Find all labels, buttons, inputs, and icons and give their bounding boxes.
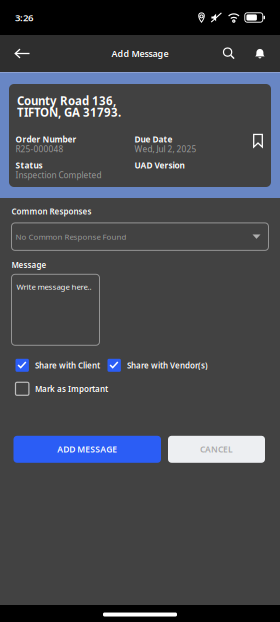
staticText: Due Date — [134, 134, 172, 145]
staticText: ADD MESSAGE — [57, 443, 117, 455]
staticText: No Common Response Found — [15, 231, 126, 242]
staticText: Inspection Completed — [15, 169, 101, 181]
staticText: Share with Vendor(s) — [127, 360, 208, 371]
staticText: R25-000048 — [15, 143, 63, 155]
staticText: Mark as Important — [35, 383, 108, 394]
button[interactable]: CANCEL — [168, 436, 265, 463]
button[interactable]: Mark as Important — [15, 382, 108, 395]
button[interactable]: ADD MESSAGE — [13, 436, 161, 463]
staticText: Wed, Jul 2, 2025 — [134, 143, 196, 155]
staticText: Order Number — [15, 134, 76, 145]
button[interactable]: Write message here.. — [11, 274, 99, 345]
button[interactable]: Search — [210, 35, 248, 72]
button[interactable]: Share with Client — [15, 359, 100, 372]
staticText: Message — [11, 259, 46, 270]
staticText: CANCEL — [200, 443, 233, 455]
button[interactable]: Bookmark — [253, 134, 263, 148]
staticText: Write message here.. — [16, 281, 91, 292]
staticText: Status — [15, 160, 42, 171]
button[interactable]: No Common Response Found — [11, 223, 268, 250]
button[interactable]: Notifications — [248, 35, 272, 72]
button[interactable]: Back — [0, 35, 50, 72]
staticText: 3:26 — [15, 11, 33, 24]
staticText: Share with Client — [35, 360, 100, 371]
staticText: Common Responses — [11, 206, 91, 217]
staticText: TIFTON, GA 31793. — [17, 105, 121, 120]
staticText: Add Message — [111, 47, 168, 60]
button[interactable]: Share with Vendor(s) — [107, 359, 208, 372]
staticText: County Road 136, — [17, 93, 116, 109]
staticText: UAD Version — [134, 160, 184, 171]
